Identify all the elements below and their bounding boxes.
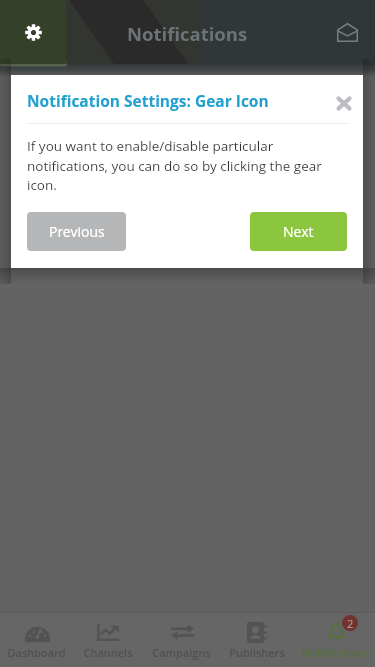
button[interactable]: Dashboard: [0, 613, 72, 667]
staticText: Next: [283, 222, 314, 241]
button[interactable]: Channels: [72, 613, 144, 667]
button[interactable]: 2: [295, 613, 375, 667]
button[interactable]: Settings: [0, 0, 66, 64]
button[interactable]: Next: [250, 212, 347, 251]
staticText: Notifications: [301, 645, 370, 660]
button[interactable]: Publishers: [219, 613, 295, 667]
staticText: Notifications: [127, 21, 248, 46]
staticText: 2: [347, 616, 354, 631]
button[interactable]: Campaigns: [144, 613, 219, 667]
staticText: Campaigns: [152, 645, 211, 660]
button[interactable]: Previous: [27, 212, 126, 251]
button[interactable]: Messages: [327, 12, 367, 52]
staticText: Previous: [49, 222, 105, 241]
staticText: Channels: [83, 645, 133, 660]
staticText: Notification Settings: Gear Icon: [27, 90, 269, 111]
staticText: Publishers: [229, 645, 285, 660]
staticText: If you want to enable/disable particular…: [27, 137, 338, 194]
button[interactable]: Close: [331, 90, 357, 116]
staticText: Dashboard: [7, 645, 66, 660]
